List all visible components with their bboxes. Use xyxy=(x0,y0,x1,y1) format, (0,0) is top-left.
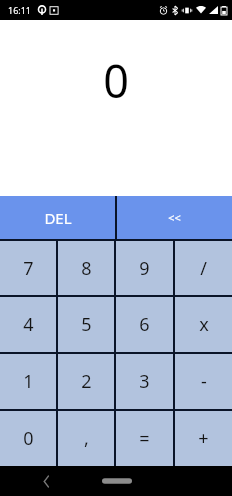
button[interactable]: + xyxy=(175,411,232,466)
staticText: x xyxy=(199,312,209,337)
button[interactable]: 9 xyxy=(116,241,173,295)
button[interactable]: = xyxy=(116,411,173,466)
button[interactable]: 4 xyxy=(0,297,56,352)
staticText: / xyxy=(200,256,207,281)
button[interactable]: 0 xyxy=(0,411,56,466)
button[interactable]: - xyxy=(175,354,232,409)
staticText: 1 xyxy=(23,369,34,394)
staticText: - xyxy=(201,369,207,394)
button[interactable]: / xyxy=(175,241,232,295)
button[interactable]: 5 xyxy=(58,297,114,352)
button[interactable]: DEL xyxy=(0,196,115,239)
staticText: 16:11 xyxy=(8,4,32,16)
staticText: 0 xyxy=(23,426,34,451)
staticText: 9 xyxy=(139,256,150,281)
staticText: , xyxy=(84,426,89,451)
button[interactable]: 6 xyxy=(116,297,173,352)
staticText: 2 xyxy=(81,369,92,394)
staticText: << xyxy=(168,210,181,225)
staticText: DEL xyxy=(44,208,72,228)
button[interactable]: 1 xyxy=(0,354,56,409)
staticText: 3 xyxy=(139,369,150,394)
staticText: + xyxy=(198,426,209,451)
button[interactable]: 2 xyxy=(58,354,114,409)
staticText: 6 xyxy=(139,312,150,337)
button[interactable]: 3 xyxy=(116,354,173,409)
button[interactable]: Back xyxy=(38,473,54,489)
staticText: 0 xyxy=(103,50,129,111)
button[interactable]: << xyxy=(117,196,232,239)
staticText: 7 xyxy=(23,256,34,281)
staticText: 8 xyxy=(81,256,92,281)
staticText: 5 xyxy=(81,312,92,337)
staticText: = xyxy=(139,426,150,451)
staticText: 4 xyxy=(23,312,34,337)
button[interactable]: x xyxy=(175,297,232,352)
button[interactable]: 7 xyxy=(0,241,56,295)
button[interactable]: , xyxy=(58,411,114,466)
button[interactable]: 8 xyxy=(58,241,114,295)
button[interactable]: Home xyxy=(102,474,132,488)
